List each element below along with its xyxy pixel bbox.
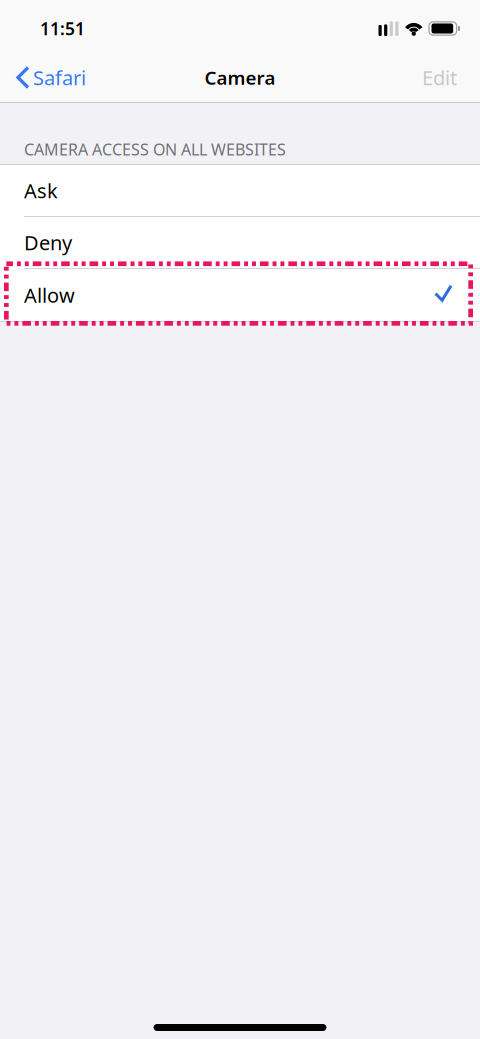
- staticText: Edit: [422, 64, 457, 91]
- staticText: Ask: [24, 177, 58, 204]
- button[interactable]: Safari: [0, 54, 96, 100]
- button[interactable]: Edit: [410, 54, 480, 100]
- staticText: Safari: [33, 64, 86, 91]
- staticText: Deny: [24, 229, 72, 256]
- staticText: Camera: [204, 65, 275, 90]
- button[interactable]: Allow: [0, 269, 480, 321]
- button[interactable]: Deny: [0, 217, 480, 269]
- staticText: Allow: [24, 282, 75, 308]
- staticText: CAMERA ACCESS ON ALL WEBSITES: [24, 139, 286, 160]
- button[interactable]: Ask: [0, 165, 480, 217]
- staticText: 11:51: [40, 17, 85, 40]
